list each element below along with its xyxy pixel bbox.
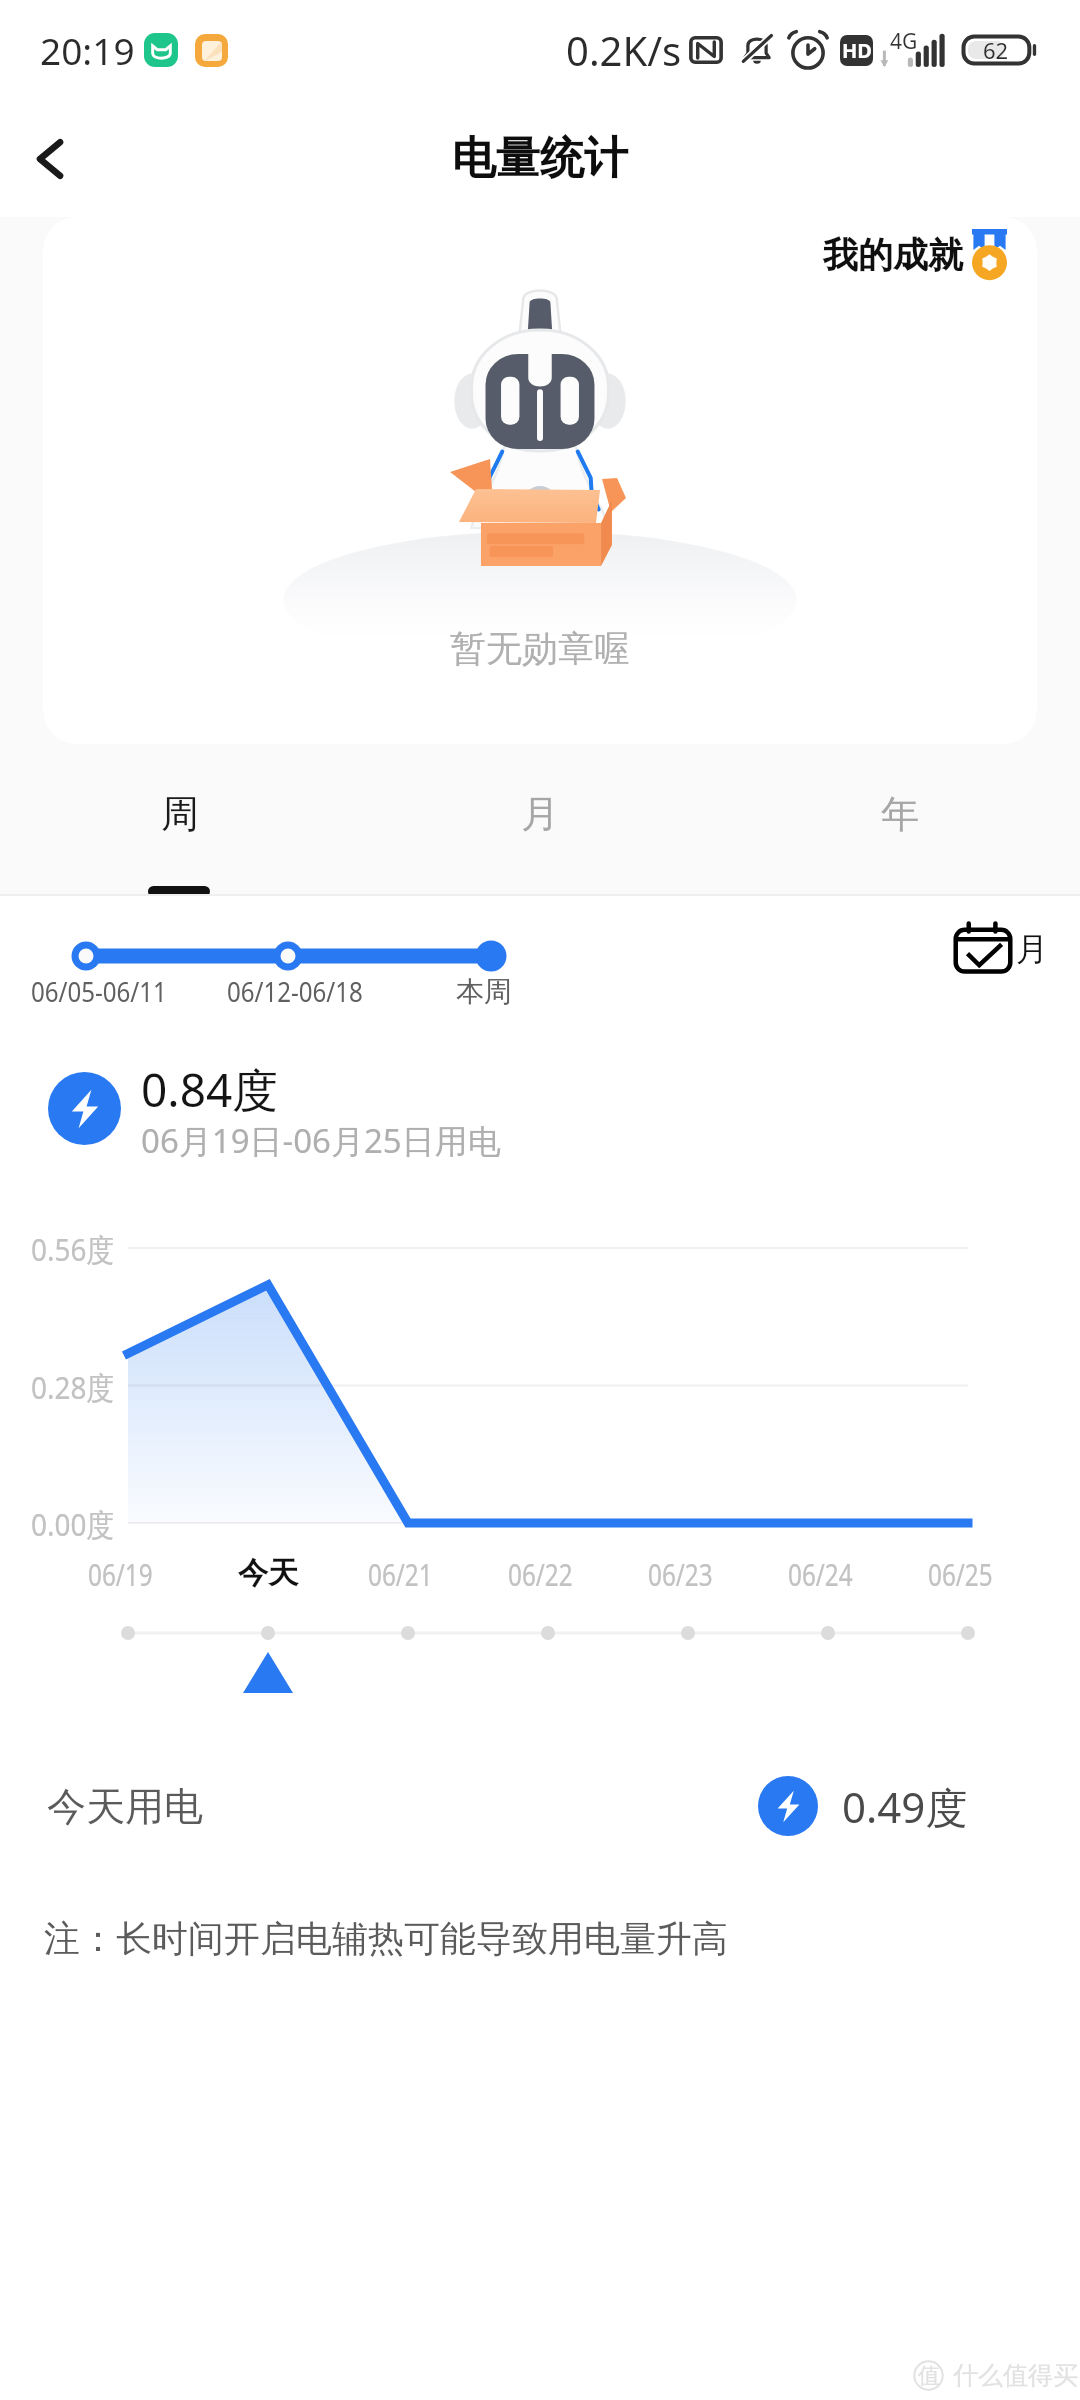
staticText: 0.56度 bbox=[31, 1228, 115, 1270]
staticText: 0.49度 bbox=[842, 1778, 968, 1835]
staticText: 0.28度 bbox=[31, 1366, 115, 1408]
button[interactable]: 年 bbox=[720, 744, 1080, 896]
staticText: HD bbox=[842, 37, 872, 64]
staticText: 0.2K/s bbox=[566, 23, 682, 77]
staticText: 电量统计 bbox=[452, 131, 628, 186]
button[interactable]: 我的成就 bbox=[43, 217, 1037, 744]
staticText: 暂无勋章喔 bbox=[450, 626, 630, 671]
staticText: 月 bbox=[1016, 929, 1048, 969]
staticText: 06/24 bbox=[788, 1554, 853, 1595]
staticText: 4G bbox=[890, 27, 918, 56]
staticText: 06/22 bbox=[508, 1554, 573, 1595]
staticText: 06/25 bbox=[928, 1554, 993, 1595]
staticText: 06/19 bbox=[88, 1554, 153, 1595]
staticText: 周 bbox=[161, 790, 199, 838]
button[interactable]: Back bbox=[8, 117, 92, 201]
staticText: 本周 bbox=[456, 974, 512, 1009]
staticText: 我的成就 bbox=[823, 233, 963, 277]
button[interactable]: 月 bbox=[360, 744, 720, 896]
staticText: 注：长时间开启电辅热可能导致用电量升高 bbox=[44, 1916, 728, 1961]
button[interactable]: 我的成就 bbox=[823, 229, 1007, 280]
staticText: 0.00度 bbox=[31, 1503, 115, 1545]
staticText: 今天用电 bbox=[47, 1782, 203, 1831]
button[interactable]: 周 bbox=[0, 744, 360, 896]
staticText: 06/23 bbox=[648, 1554, 713, 1595]
staticText: 06/05-06/11 bbox=[31, 972, 167, 1010]
staticText: 月 bbox=[521, 790, 559, 838]
button[interactable]: 今天用电 bbox=[0, 1760, 1080, 1852]
staticText: 今天 bbox=[238, 1554, 298, 1592]
staticText: 62 bbox=[983, 35, 1009, 65]
button[interactable]: Switch to month bbox=[952, 920, 1048, 978]
staticText: 0.84度 bbox=[141, 1058, 279, 1121]
staticText: 值 bbox=[918, 2362, 940, 2390]
staticText: 06月19日-06月25日用电 bbox=[141, 1118, 501, 1163]
staticText: 06/21 bbox=[368, 1554, 433, 1595]
staticText: 20:19 bbox=[40, 25, 135, 75]
staticText: 年 bbox=[881, 790, 919, 838]
staticText: 什么值得买 bbox=[953, 2360, 1078, 2391]
staticText: 06/12-06/18 bbox=[227, 972, 363, 1010]
